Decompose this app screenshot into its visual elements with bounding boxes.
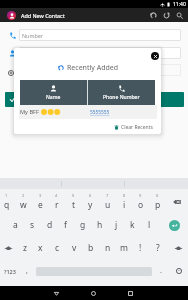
staticText: 5555555 xyxy=(90,109,110,116)
staticText: h xyxy=(97,219,103,231)
button[interactable]: . xyxy=(153,260,168,282)
staticText: 2 xyxy=(22,193,25,198)
button[interactable]: ! xyxy=(132,237,149,259)
staticText: p xyxy=(155,199,161,211)
button[interactable]: 9 xyxy=(132,191,149,213)
button[interactable]: Search xyxy=(173,9,186,22)
staticText: 5 xyxy=(72,193,75,198)
staticText: ? xyxy=(156,242,160,254)
button[interactable]: b xyxy=(82,237,99,259)
staticText: 3 xyxy=(39,193,42,198)
button[interactable]: f xyxy=(57,214,74,236)
staticText: y xyxy=(88,199,93,211)
staticText: i xyxy=(123,199,126,211)
button[interactable]: k xyxy=(124,214,141,236)
button[interactable]: z xyxy=(16,237,33,259)
staticText: j xyxy=(115,219,118,231)
staticText: o xyxy=(138,199,144,211)
button[interactable]: ? xyxy=(149,237,166,259)
button[interactable]: j xyxy=(108,214,125,236)
button[interactable]: Back xyxy=(50,287,62,299)
button[interactable]: x xyxy=(32,237,49,259)
staticText: ! xyxy=(139,242,142,254)
staticText: q xyxy=(4,199,10,211)
button[interactable]: n xyxy=(99,237,116,259)
button[interactable]: Shift xyxy=(169,237,188,259)
staticText: g xyxy=(80,219,86,231)
staticText: k xyxy=(130,219,135,231)
button[interactable]: 3 xyxy=(32,191,49,213)
button[interactable]: m xyxy=(115,237,132,259)
staticText: c xyxy=(55,242,60,254)
button[interactable]: 4 xyxy=(48,191,65,213)
button[interactable]: Shift xyxy=(0,237,17,259)
button[interactable]: Home xyxy=(87,287,99,299)
button[interactable]: 6 xyxy=(82,191,99,213)
button[interactable]: My BFF xyxy=(20,105,157,119)
button[interactable]: Backspace xyxy=(166,191,188,213)
staticText: 0 xyxy=(156,193,159,198)
button[interactable]: 8 xyxy=(116,191,133,213)
button[interactable]: 0 xyxy=(149,191,166,213)
button[interactable]: Name xyxy=(20,80,87,105)
staticText: b xyxy=(88,242,94,254)
staticText: 4 xyxy=(55,193,58,198)
staticText: Add New Contact xyxy=(21,12,65,19)
button[interactable]: 1 xyxy=(0,191,15,213)
staticText: 6 xyxy=(89,193,92,198)
staticText: w xyxy=(20,199,27,211)
button[interactable]: h xyxy=(91,214,108,236)
staticText: z xyxy=(23,242,27,254)
staticText: n xyxy=(105,242,111,254)
button[interactable]: Close xyxy=(151,52,159,60)
button[interactable]: v xyxy=(66,237,83,259)
staticText: r xyxy=(55,199,59,211)
staticText: My BFF xyxy=(20,108,39,116)
button[interactable]: 5 xyxy=(65,191,82,213)
button[interactable]: s xyxy=(24,214,41,236)
staticText: , xyxy=(26,266,28,276)
button[interactable]: a xyxy=(7,214,24,236)
staticText: Name xyxy=(46,94,61,101)
button[interactable]: Phone Number xyxy=(88,80,155,105)
staticText: Recently Added xyxy=(67,63,118,73)
button[interactable]: l xyxy=(141,214,158,236)
button[interactable]: Clear Recents xyxy=(114,122,153,132)
staticText: d xyxy=(47,219,53,231)
staticText: 11:40 xyxy=(173,1,186,8)
button[interactable]: Add xyxy=(8,70,14,76)
button[interactable]: History xyxy=(147,9,160,22)
staticText: s xyxy=(30,219,35,231)
button[interactable]: d xyxy=(41,214,58,236)
button[interactable]: Account xyxy=(7,11,16,20)
button[interactable]: 2 xyxy=(15,191,32,213)
staticText: l xyxy=(148,219,151,231)
button[interactable]: c xyxy=(49,237,66,259)
button[interactable]: Save xyxy=(5,92,184,107)
button[interactable]: Enter xyxy=(163,214,185,236)
staticText: v xyxy=(72,242,77,254)
staticText: 7 xyxy=(106,193,109,198)
button[interactable]: , xyxy=(19,260,34,282)
staticText: m xyxy=(120,242,128,254)
staticText: 9 xyxy=(139,193,142,198)
button[interactable]: 7 xyxy=(99,191,116,213)
staticText: f xyxy=(64,219,67,231)
staticText: t xyxy=(72,199,76,211)
staticText: 1 xyxy=(5,193,8,198)
button[interactable]: g xyxy=(74,214,91,236)
button[interactable]: ?123 xyxy=(0,260,19,282)
button[interactable]: Recents xyxy=(124,287,136,299)
staticText: u xyxy=(105,199,111,211)
staticText: e xyxy=(38,199,43,211)
staticText: x xyxy=(38,242,43,254)
staticText: ?123 xyxy=(4,268,16,275)
button[interactable]: Emoji xyxy=(169,260,188,282)
button[interactable]: Refresh xyxy=(160,9,173,22)
staticText: . xyxy=(160,266,162,276)
staticText: a xyxy=(13,219,18,231)
